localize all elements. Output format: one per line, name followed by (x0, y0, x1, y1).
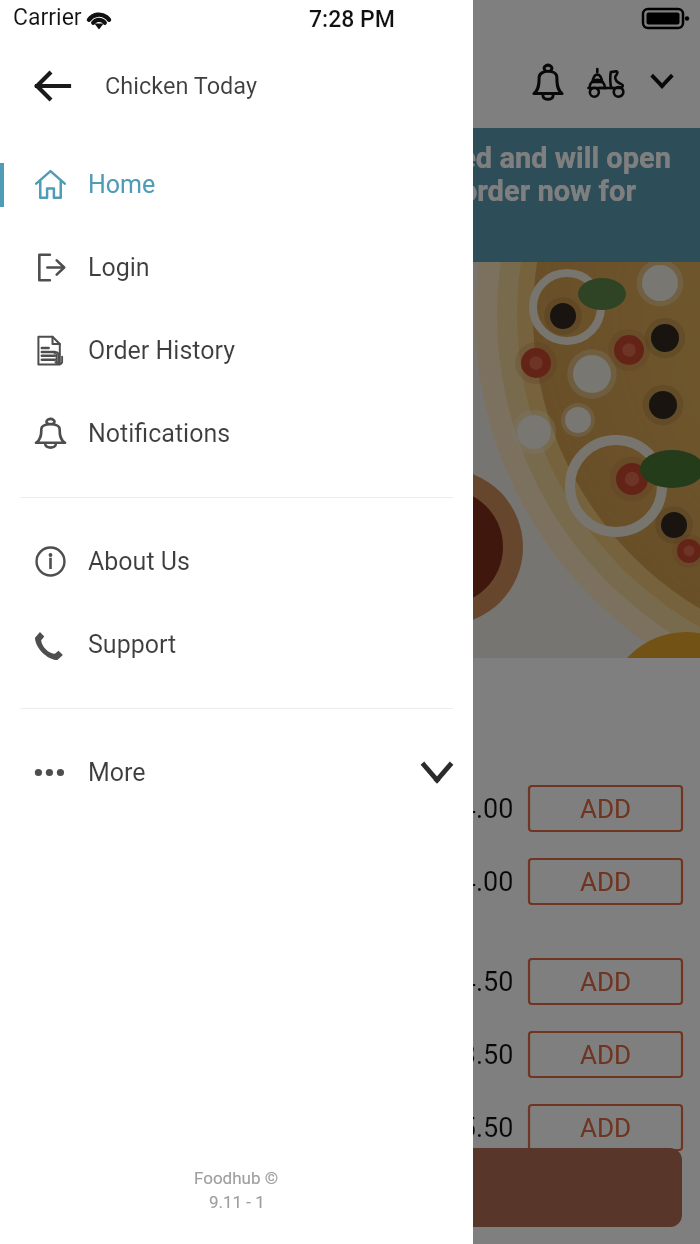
staticText: Foodhub © (194, 1168, 279, 1188)
staticText: £4.00 (445, 866, 514, 898)
button[interactable]: Login (0, 226, 473, 309)
staticText: Home (88, 170, 156, 199)
button[interactable]: ADD (528, 858, 683, 905)
button[interactable]: Support (0, 603, 473, 686)
staticText: £4.50 (445, 966, 514, 998)
staticText: 9.11 - 1 (209, 1192, 265, 1212)
button[interactable]: Expand (640, 60, 684, 104)
staticText: About Us (88, 547, 190, 576)
staticText: Carrier (13, 4, 82, 31)
staticText: More (88, 758, 146, 787)
staticText: The restaurant is closed and will open (0, 141, 671, 175)
staticText: 7:28 PM (309, 6, 395, 33)
button[interactable]: Home (0, 143, 473, 226)
staticText: ADD (580, 794, 632, 824)
button[interactable]: ADD (528, 785, 683, 832)
staticText: ADD (580, 1040, 632, 1070)
button[interactable]: View Basket (18, 1148, 682, 1227)
button[interactable]: Delivery (582, 56, 634, 108)
staticText: Order History (88, 336, 235, 365)
button[interactable]: Notifications (0, 392, 473, 475)
staticText: ADD (580, 867, 632, 897)
staticText: Notifications (88, 419, 231, 448)
staticText: Support (88, 630, 177, 659)
staticText: £5.50 (445, 1112, 514, 1144)
staticText: ADD (580, 1113, 632, 1143)
staticText: ADD (580, 967, 632, 997)
button[interactable]: ADD (528, 958, 683, 1005)
staticText: Chicken Today (105, 72, 258, 100)
staticText: at 4:00 PM. Pre-order now for (0, 174, 636, 208)
staticText: Login (88, 253, 150, 282)
button[interactable]: ADD (528, 1031, 683, 1078)
button[interactable]: About Us (0, 520, 473, 603)
staticText: View Basket (276, 1172, 425, 1204)
staticText: £3.50 (445, 1039, 514, 1071)
button[interactable]: Back (24, 58, 80, 114)
staticText: £4.00 (445, 793, 514, 825)
button[interactable]: ADD (528, 1104, 683, 1151)
button[interactable]: Order History (0, 309, 473, 392)
button[interactable]: More (0, 731, 473, 814)
button[interactable]: Notifications (522, 56, 574, 108)
